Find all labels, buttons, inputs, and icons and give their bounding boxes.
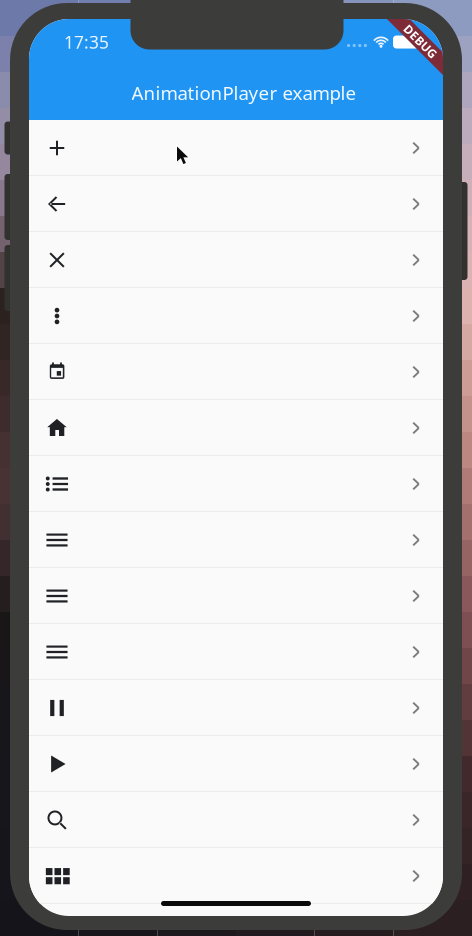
button[interactable]: menu_close: [29, 568, 443, 624]
button[interactable]: play_pause: [29, 736, 443, 792]
button[interactable]: event_add: [29, 344, 443, 400]
staticText: AnimationPlayer example: [131, 80, 356, 105]
staticText: 17:35: [64, 30, 109, 53]
button[interactable]: search_ellipsis: [29, 792, 443, 848]
button[interactable]: menu_home: [29, 624, 443, 680]
staticText: DEBUG: [400, 33, 442, 49]
button[interactable]: close_menu: [29, 232, 443, 288]
button[interactable]: add_event: [29, 120, 443, 176]
button[interactable]: ellipsis_search: [29, 288, 443, 344]
button[interactable]: arrow_menu: [29, 176, 443, 232]
button[interactable]: pause_play: [29, 680, 443, 736]
button[interactable]: view_list: [29, 848, 443, 904]
button[interactable]: menu_arrow: [29, 512, 443, 568]
button[interactable]: list_view: [29, 456, 443, 512]
button[interactable]: home_menu: [29, 400, 443, 456]
